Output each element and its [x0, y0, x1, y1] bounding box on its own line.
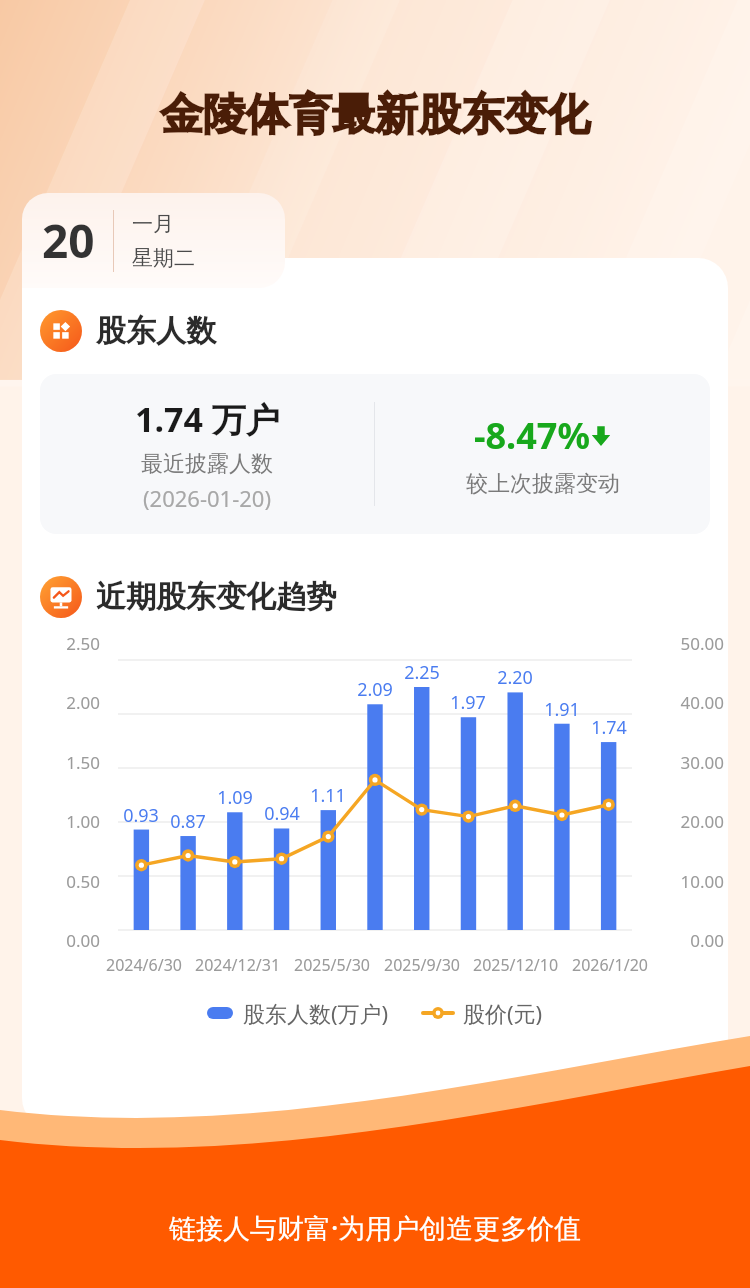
staticText: 2.00: [30, 691, 100, 714]
button[interactable]: 股价(元): [423, 998, 543, 1028]
staticText: 1.11: [302, 783, 354, 808]
button[interactable]: 20: [22, 193, 285, 288]
staticText: 0.50: [30, 870, 100, 893]
staticText: 0.00: [30, 929, 100, 952]
staticText: (2026-01-20): [143, 483, 272, 513]
staticText: 30.00: [650, 751, 724, 774]
staticText: 1.74 万户: [135, 396, 280, 442]
staticText: -8.47%: [474, 411, 590, 460]
staticText: 2024/6/30: [106, 954, 182, 976]
staticText: 20: [42, 209, 95, 272]
staticText: 股东人数: [96, 312, 216, 350]
staticText: 星期二: [132, 245, 195, 271]
staticText: 股价(元): [463, 998, 543, 1028]
staticText: 50.00: [650, 632, 724, 655]
staticText: 40.00: [650, 691, 724, 714]
button[interactable]: 股东人数(万户): [207, 998, 389, 1028]
other: 股东人数: [40, 310, 82, 352]
staticText: 2025/5/30: [294, 954, 370, 976]
staticText: 金陵体育最新股东变化: [160, 88, 590, 142]
staticText: 20.00: [650, 810, 724, 833]
staticText: 1.00: [30, 810, 100, 833]
staticText: 10.00: [650, 870, 724, 893]
other: 近期股东变化趋势: [40, 576, 82, 618]
staticText: 1.74: [583, 715, 635, 740]
staticText: 最近披露人数: [141, 450, 273, 478]
staticText: 股东人数(万户): [243, 998, 389, 1028]
staticText: 2026/1/20: [572, 954, 648, 976]
staticText: 链接人与财富·为用户创造更多价值: [169, 1209, 582, 1246]
staticText: 0.00: [650, 929, 724, 952]
staticText: 2024/12/31: [195, 954, 281, 976]
button[interactable]: 1.74 万户: [40, 374, 710, 534]
staticText: 一月: [132, 211, 174, 237]
staticText: 近期股东变化趋势: [96, 578, 336, 616]
staticText: 2025/12/10: [473, 954, 559, 976]
staticText: 0.94: [256, 801, 308, 826]
staticText: 2.50: [30, 632, 100, 655]
staticText: 1.09: [209, 785, 261, 810]
staticText: 1.91: [536, 697, 588, 722]
staticText: 2.25: [396, 660, 448, 685]
staticText: 2.09: [349, 677, 401, 702]
staticText: 0.87: [162, 809, 214, 834]
staticText: 较上次披露变动: [466, 470, 620, 498]
staticText: 1.97: [442, 690, 494, 715]
button[interactable]: 股东人数: [40, 310, 216, 352]
staticText: 2.20: [489, 665, 541, 690]
staticText: 2025/9/30: [384, 954, 460, 976]
staticText: 0.93: [115, 803, 167, 828]
staticText: 1.50: [30, 751, 100, 774]
button[interactable]: 近期股东变化趋势: [40, 576, 336, 618]
